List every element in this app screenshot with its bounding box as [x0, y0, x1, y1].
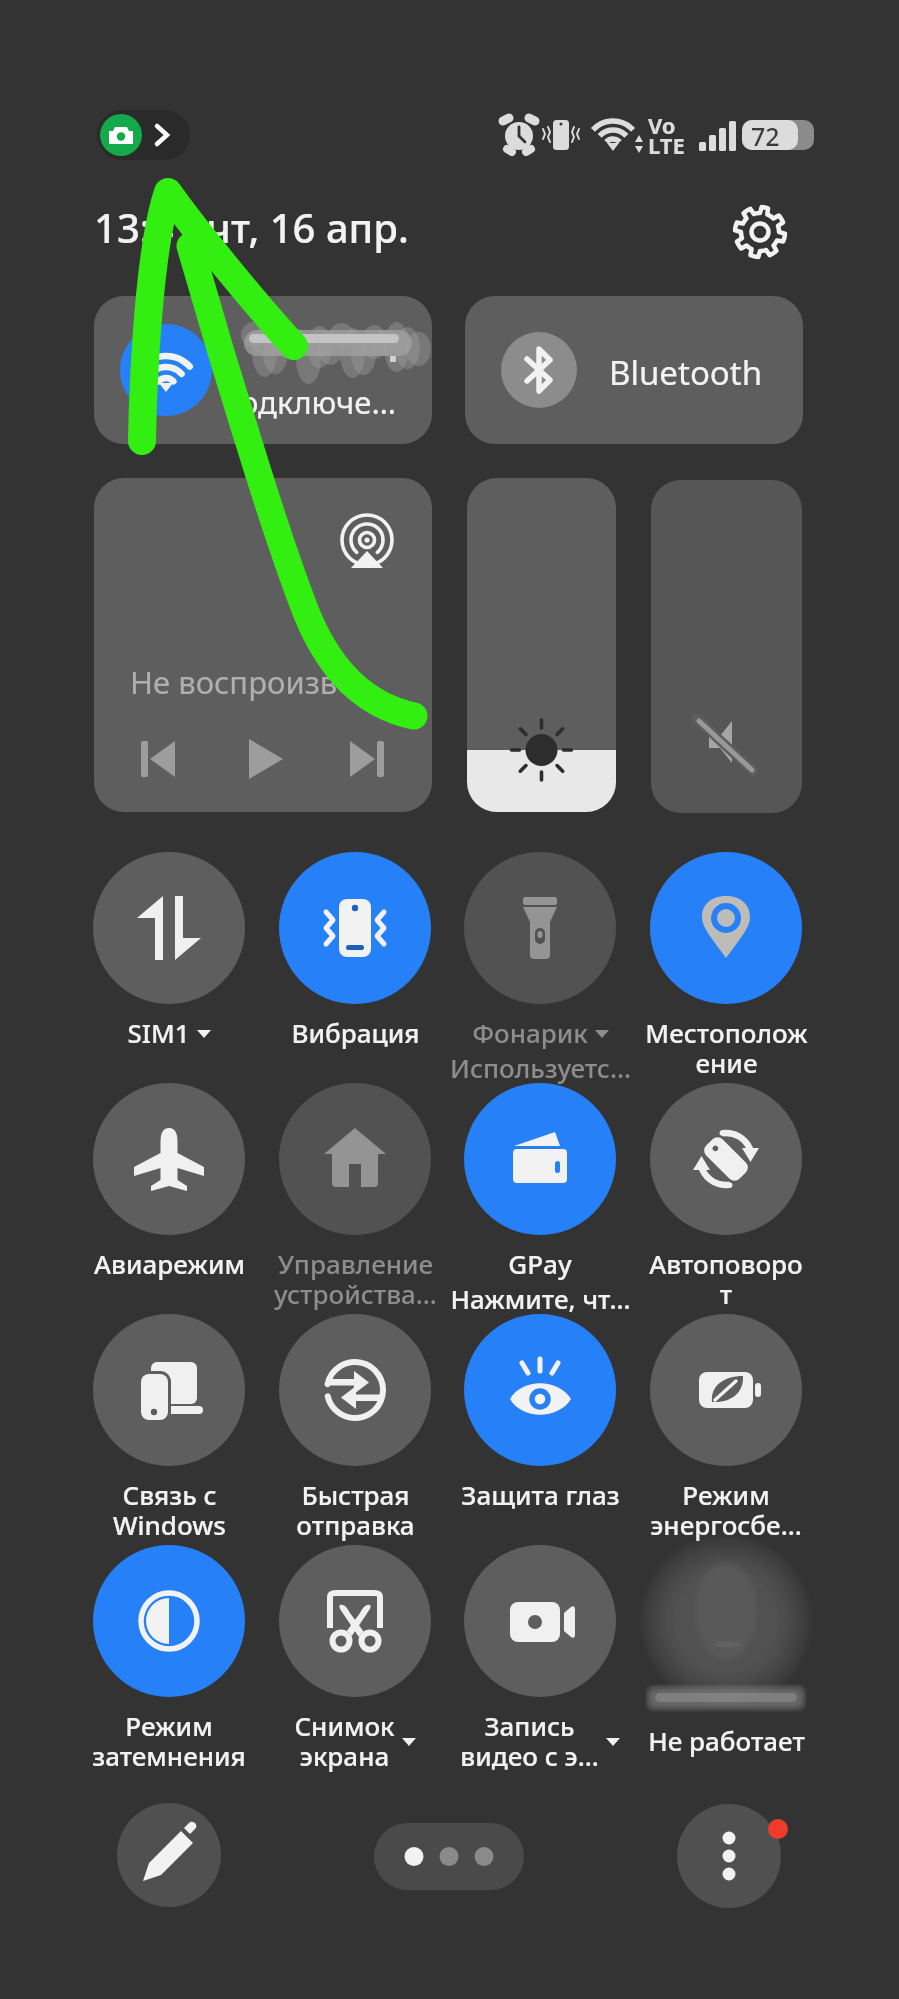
staticText: Управление устройства… [274, 1246, 437, 1312]
staticText: 72 [751, 119, 780, 153]
button[interactable]: SIM1 [76, 852, 262, 1050]
button[interactable]: Camera privacy indicator [97, 110, 190, 160]
button[interactable]: Режим затемнения [76, 1545, 262, 1774]
staticText: Не воспроизво.. [130, 661, 373, 703]
button[interactable]: Защита глаз [447, 1314, 633, 1512]
staticText: одключе… [240, 381, 396, 423]
staticText: Bluetooth [609, 350, 763, 395]
button[interactable]: GPay [447, 1083, 633, 1316]
staticText: Снимок экрана [294, 1708, 395, 1774]
staticText: Фонарик [472, 1015, 588, 1050]
button[interactable]: Автоповоро т [633, 1083, 819, 1312]
button[interactable]: Запись видео с э… [447, 1545, 633, 1774]
staticText: Связь с Windows [113, 1477, 226, 1543]
button[interactable]: Silent mode [651, 480, 802, 813]
button[interactable]: Bluetooth [465, 296, 803, 444]
button[interactable]: Авиарежим [76, 1083, 262, 1281]
button[interactable]: Settings [728, 200, 792, 264]
button[interactable]: Снимок экрана [262, 1545, 448, 1774]
button[interactable]: More options [677, 1804, 781, 1908]
staticText: Авиарежим [94, 1246, 245, 1281]
button[interactable]: Не воспроизво.. [94, 478, 432, 812]
staticText: SIM1 [127, 1015, 190, 1050]
staticText: 13:41 чт, 16 апр. [94, 200, 409, 254]
staticText: Защита глаз [461, 1477, 620, 1512]
staticText: Нажмите, чт… [450, 1281, 631, 1316]
button[interactable]: Связь с Windows [76, 1314, 262, 1543]
staticText: LTE [648, 130, 685, 160]
staticText: Vo [648, 110, 676, 140]
button[interactable]: Brightness [467, 478, 616, 812]
staticText: Режим энергосбе… [650, 1477, 802, 1543]
button[interactable]: Быстрая отправка [262, 1314, 448, 1543]
staticText: Вибрация [291, 1015, 420, 1050]
staticText: GPay [508, 1246, 572, 1281]
button[interactable]: Фонарик [447, 852, 633, 1085]
button[interactable]: Вибрация [262, 852, 448, 1050]
button[interactable]: Местополож ение [633, 852, 819, 1081]
button[interactable]: Edit [117, 1803, 221, 1907]
button[interactable]: Unavailable tile [621, 1521, 831, 1751]
staticText: Не работает [648, 1723, 805, 1758]
button[interactable]: Page indicator [374, 1823, 524, 1890]
staticText: Быстрая отправка [296, 1477, 415, 1543]
staticText: Режим затемнения [92, 1708, 246, 1774]
staticText: Используетс… [450, 1050, 631, 1085]
button[interactable]: Управление устройства… [262, 1083, 448, 1312]
staticText: Местополож ение [645, 1015, 808, 1081]
button[interactable]: Режим энергосбе… [633, 1314, 819, 1543]
staticText: Запись видео с э… [460, 1708, 599, 1774]
button[interactable]: одключе… [94, 296, 432, 444]
staticText: Автоповоро т [649, 1246, 803, 1312]
